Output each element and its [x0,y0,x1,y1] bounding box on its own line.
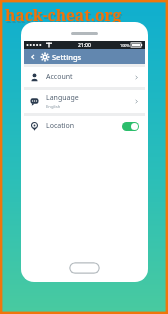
button[interactable]: Language [24,90,145,113]
staticText: 100% [120,43,130,48]
staticText: Account [46,72,73,82]
staticText: English [46,104,61,110]
staticText: Settings [52,52,82,62]
button[interactable]: Home [69,262,100,274]
staticText: Location [46,121,122,131]
staticText: 21:00 [78,42,91,49]
staticText: hack-cheat.org [5,4,122,25]
button[interactable]: Location toggle [122,122,139,131]
staticText: Language [46,93,79,103]
button[interactable]: Back [28,52,38,62]
button[interactable]: Account [24,67,145,87]
button[interactable]: Location [24,116,145,136]
staticText: hack-cheat.org [6,6,123,27]
